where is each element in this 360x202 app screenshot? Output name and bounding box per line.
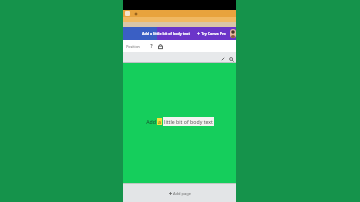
button[interactable]: Add a little bit of body text: [141, 31, 191, 36]
staticText: Position: [126, 44, 140, 49]
button[interactable]: Try Canva Pro: [196, 31, 227, 36]
button[interactable]: Position: [125, 43, 141, 50]
button[interactable]: Add: [146, 117, 214, 126]
button[interactable]: Edit: [220, 56, 226, 62]
button[interactable]: Add page: [123, 184, 236, 202]
button[interactable]: New tab: [133, 11, 139, 17]
staticText: little bit of body text: [164, 118, 213, 125]
button[interactable]: Search: [228, 56, 234, 62]
staticText: Add page: [173, 191, 191, 196]
button[interactable]: Tab: [125, 11, 130, 16]
staticText: Add: [146, 118, 156, 125]
staticText: ?: [150, 43, 153, 50]
button[interactable]: Account: [230, 29, 236, 38]
staticText: a: [158, 118, 161, 125]
staticText: Try Canva Pro: [201, 31, 226, 36]
staticText: Add a little bit of body text: [142, 31, 190, 36]
button[interactable]: Help: [148, 43, 155, 50]
button[interactable]: Lock: [157, 43, 164, 50]
